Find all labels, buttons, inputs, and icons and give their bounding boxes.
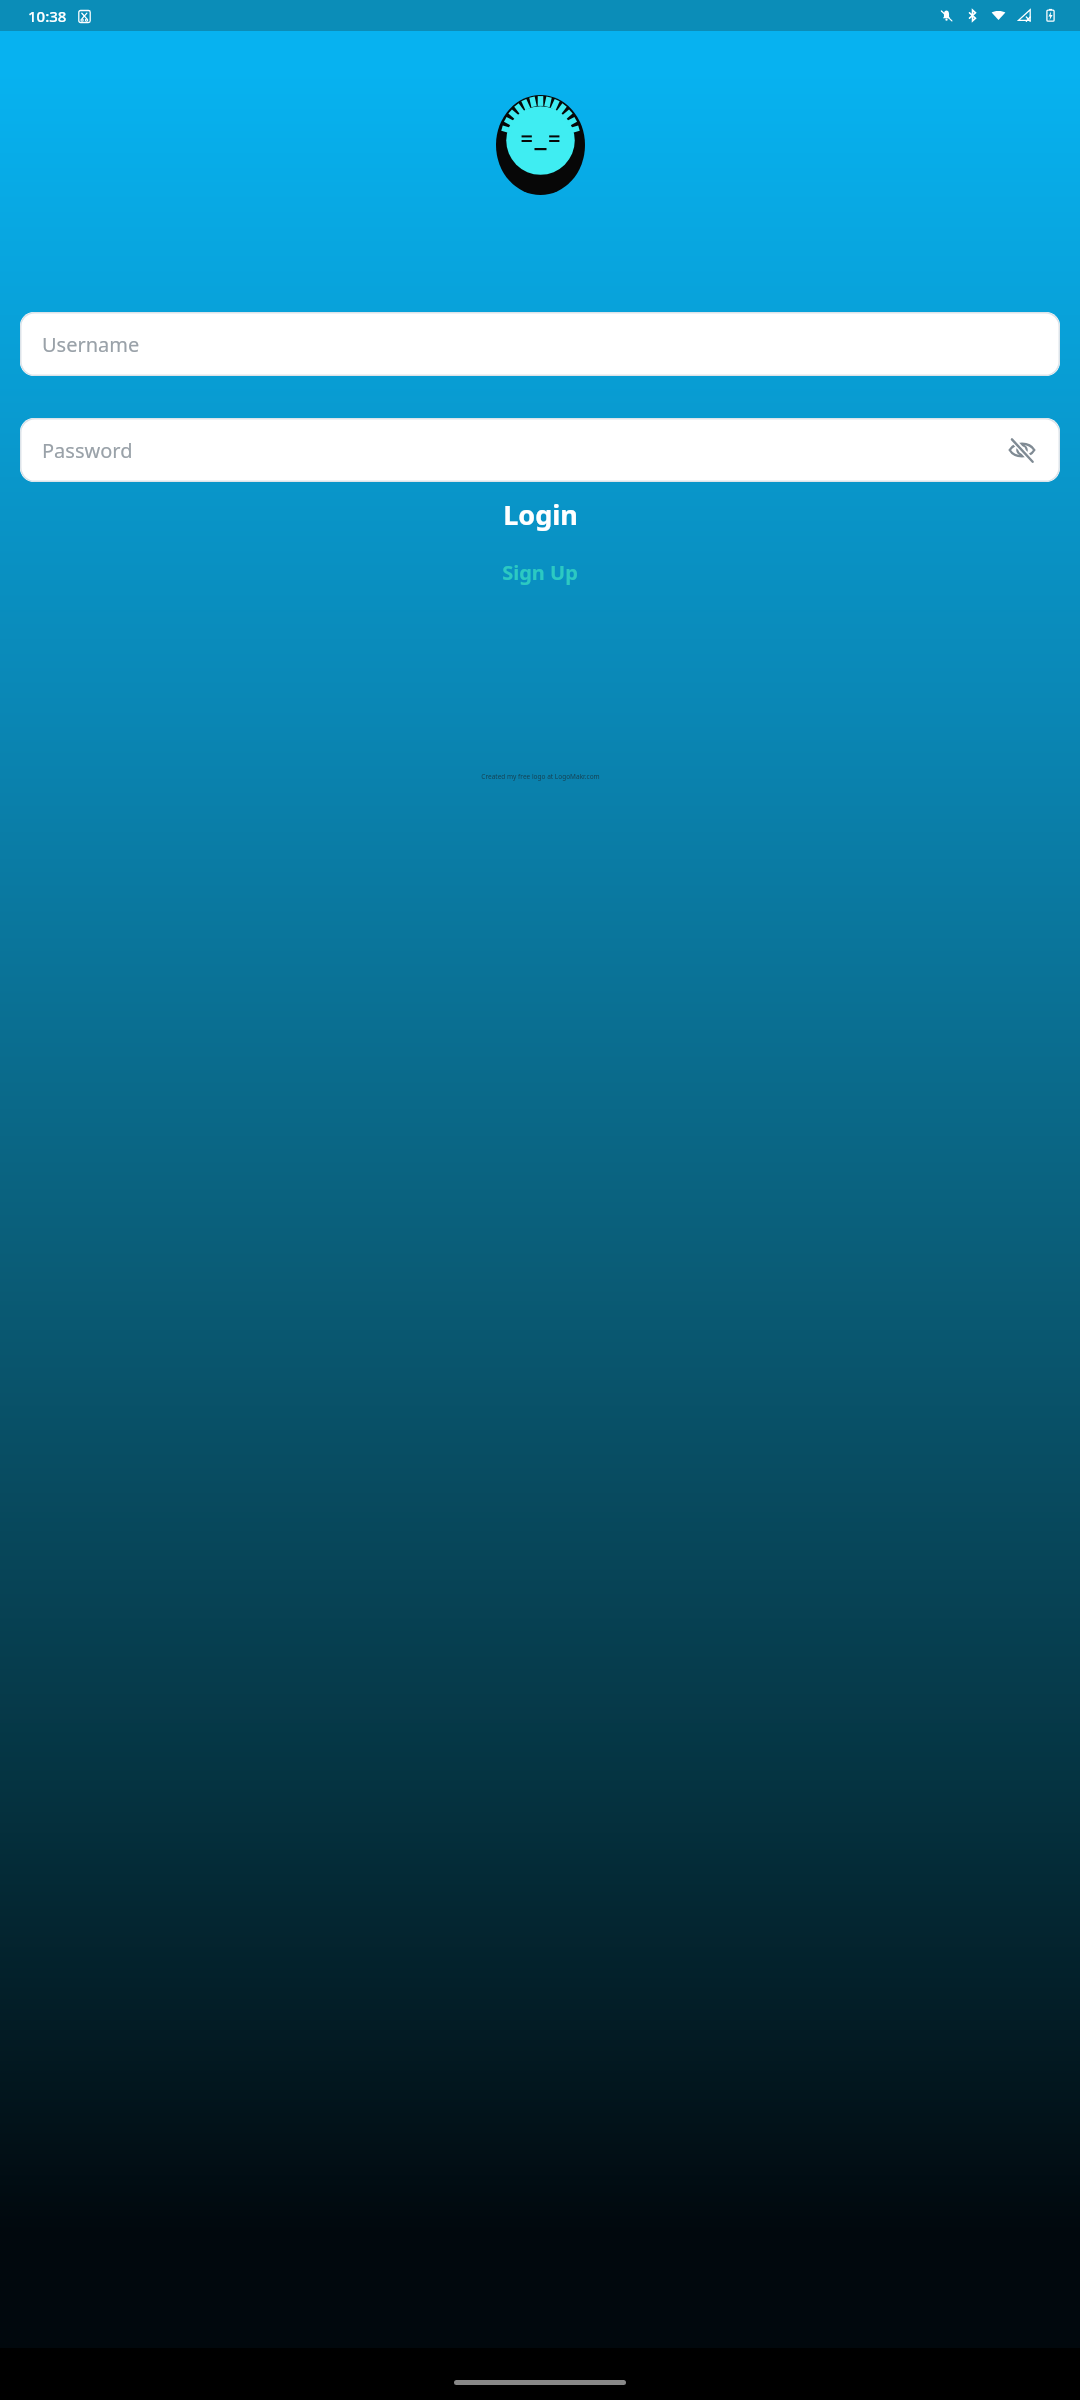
button[interactable]: Username: [20, 312, 1060, 376]
staticText: Login: [503, 496, 578, 533]
button[interactable]: Login: [0, 490, 1080, 538]
staticText: Username: [42, 331, 140, 358]
staticText: Sign Up: [502, 559, 578, 586]
staticText: Created my free logo at LogoMakr.com: [481, 772, 600, 781]
staticText: Password: [42, 437, 133, 464]
button[interactable]: Sign Up: [0, 552, 1080, 592]
button[interactable]: Show password: [1004, 432, 1040, 468]
button[interactable]: Password: [20, 418, 1060, 482]
staticText: 10:38: [28, 6, 67, 26]
